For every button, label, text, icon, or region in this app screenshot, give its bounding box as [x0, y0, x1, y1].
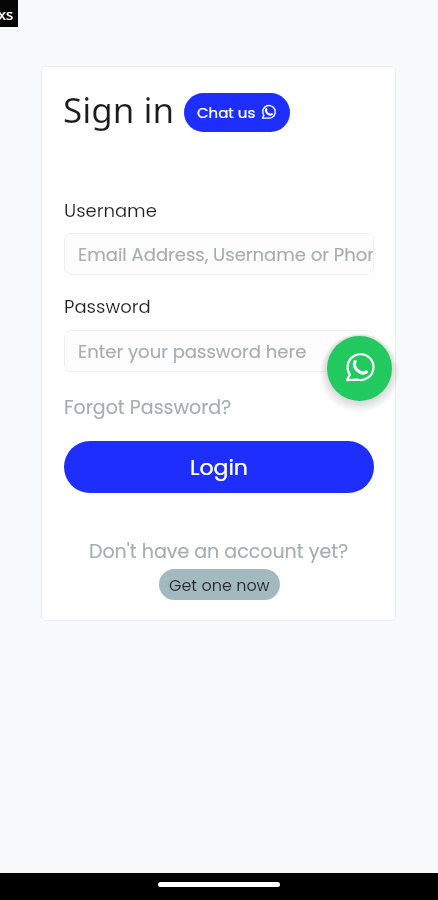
button[interactable]: Get one now: [159, 569, 280, 600]
staticText: Password: [64, 294, 151, 319]
staticText: Chat us: [197, 102, 256, 123]
staticText: Login: [190, 452, 248, 483]
staticText: Username: [64, 198, 157, 223]
button[interactable]: Enter your password here: [64, 330, 374, 372]
staticText: Email Address, Username or Phone: [78, 242, 374, 267]
button[interactable]: Login: [64, 441, 374, 493]
staticText: Get one now: [169, 574, 270, 596]
staticText: Forgot Password?: [64, 394, 232, 421]
staticText: Sign in: [63, 86, 175, 134]
staticText: xs: [0, 4, 14, 24]
button[interactable]: Email Address, Username or Phone: [64, 233, 374, 275]
staticText: Enter your password here: [78, 339, 307, 364]
staticText: Don't have an account yet?: [89, 538, 349, 565]
button[interactable]: Forgot Password?: [64, 394, 232, 421]
button[interactable]: Chat on WhatsApp: [327, 336, 392, 401]
button[interactable]: Chat us: [184, 93, 290, 132]
